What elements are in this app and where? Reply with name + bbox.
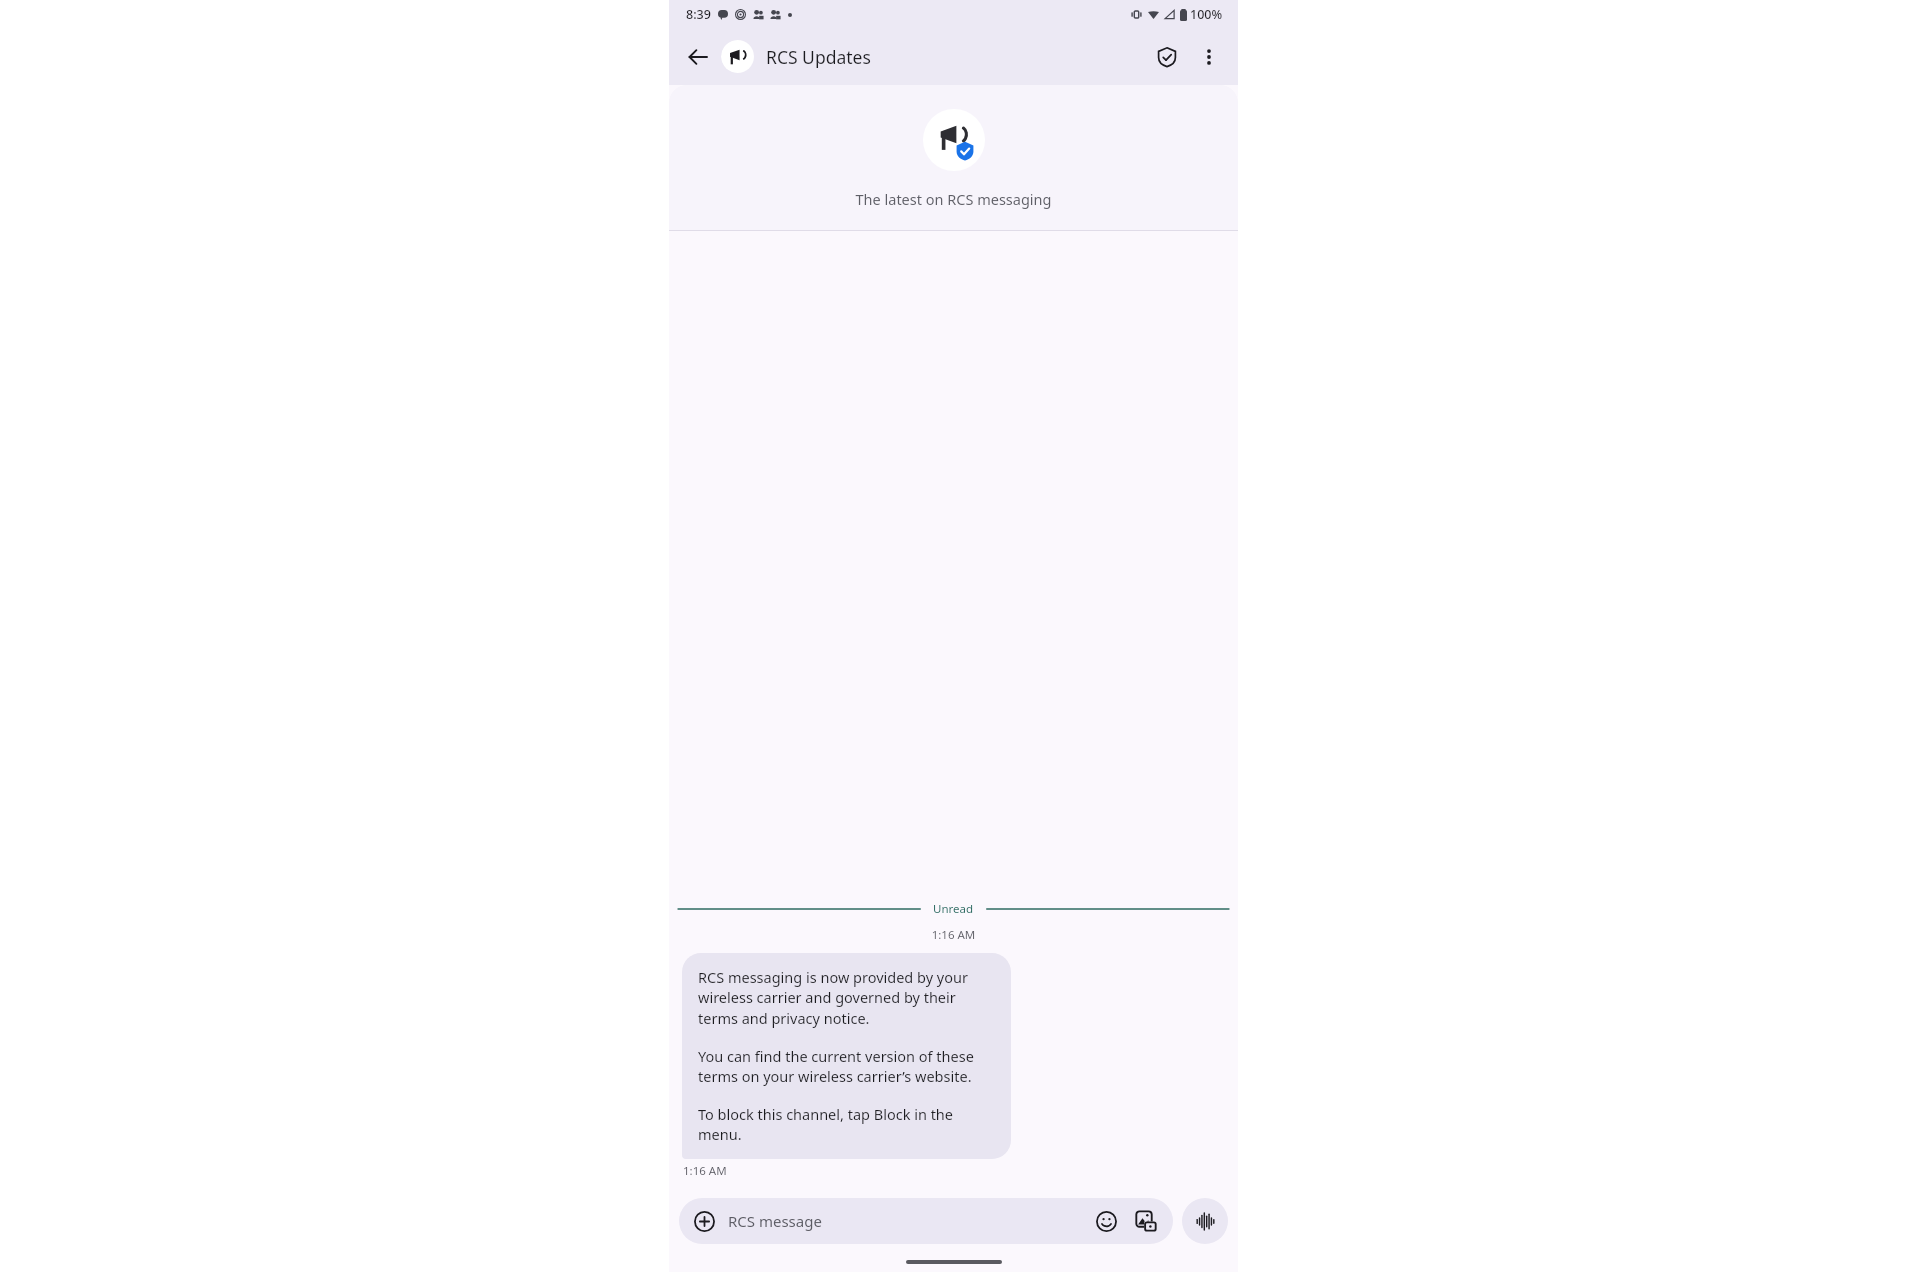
- button[interactable]: RCS messaging is now provided by your wi…: [682, 953, 1011, 1159]
- button[interactable]: Insert emoji: [1091, 1206, 1121, 1236]
- button[interactable]: The latest on RCS messaging: [669, 85, 1238, 231]
- staticText: To block this channel, tap Block in the …: [698, 1104, 995, 1145]
- button[interactable]: Voice message: [1182, 1198, 1228, 1244]
- staticText: 1:16 AM: [683, 1163, 727, 1179]
- staticText: 100%: [1190, 6, 1223, 23]
- button[interactable]: Verified business: [1146, 36, 1188, 78]
- staticText: The latest on RCS messaging: [669, 189, 1238, 209]
- button[interactable]: Gallery: [1131, 1206, 1161, 1236]
- button[interactable]: Back: [677, 36, 719, 78]
- staticText: 8:39: [686, 6, 711, 23]
- button[interactable]: RCS Updates: [721, 40, 1146, 73]
- staticText: RCS Updates: [766, 45, 871, 69]
- staticText: RCS message: [728, 1211, 1091, 1231]
- staticText: RCS messaging is now provided by your wi…: [698, 967, 995, 1029]
- button[interactable]: Add attachment: [691, 1208, 717, 1234]
- staticText: 1:16 AM: [669, 927, 1238, 943]
- button[interactable]: More options: [1188, 36, 1230, 78]
- staticText: Unread: [933, 901, 974, 917]
- staticText: You can find the current version of thes…: [698, 1046, 995, 1087]
- button[interactable]: Add attachment: [679, 1198, 1173, 1244]
